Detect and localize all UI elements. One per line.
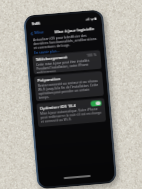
staticText: 9:46 — [31, 21, 41, 27]
staticText: Préparation — [37, 76, 62, 83]
staticText: Mise — [34, 29, 45, 36]
staticText: Optimiser iOS 18.4 — [40, 103, 76, 111]
staticText: Téléchargement — [35, 55, 68, 62]
button[interactable]: En savoir plus… — [28, 48, 62, 56]
button[interactable]: Mise — [26, 28, 47, 38]
staticText: Mise à jour automatique. Votre iPhone pe… — [40, 107, 103, 124]
button[interactable]: Téléchargement — [32, 50, 102, 74]
staticText: Actualiser iOS pour bénéficier des derni… — [33, 32, 98, 50]
button[interactable]: Automatic updates toggle — [90, 100, 102, 107]
staticText: 100 % — [86, 52, 98, 58]
staticText: Cette mise à jour peut être installée. P… — [36, 58, 99, 73]
staticText: Restez connecté au secteur et au réseau … — [38, 79, 101, 100]
button[interactable]: Préparation — [34, 71, 104, 101]
staticText: Mise à jour logicielle — [54, 26, 95, 35]
button[interactable]: Optimiser iOS 18.4 — [36, 98, 106, 127]
